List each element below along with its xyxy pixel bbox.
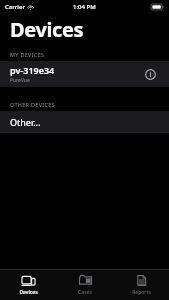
staticText: 1:04 PM — [73, 3, 96, 11]
staticText: PureVue — [10, 77, 30, 84]
button[interactable]: More info — [141, 65, 159, 83]
button[interactable]: Other... — [0, 111, 169, 133]
staticText: Cases — [78, 289, 92, 296]
button[interactable]: pv-319e34 — [0, 61, 169, 87]
staticText: MY DEVICES — [10, 51, 45, 58]
staticText: pv-319e34 — [10, 64, 55, 76]
staticText: OTHER DEVICES — [10, 101, 55, 108]
button[interactable]: Reports — [113, 270, 169, 300]
staticText: Reports — [132, 289, 151, 296]
staticText: Devices — [10, 16, 84, 43]
staticText: Devices — [19, 289, 38, 296]
button[interactable]: Devices — [0, 270, 57, 300]
staticText: Other... — [10, 116, 41, 128]
button[interactable]: Cases — [57, 270, 113, 300]
staticText: Carrier — [5, 3, 25, 11]
